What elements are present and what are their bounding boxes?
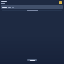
button[interactable]: [1, 5, 63, 9]
button[interactable]: Continue: [27, 59, 37, 61]
button[interactable]: App badge: [59, 1, 62, 4]
button[interactable]: [1, 1, 59, 4]
button[interactable]: [2, 10, 62, 11]
